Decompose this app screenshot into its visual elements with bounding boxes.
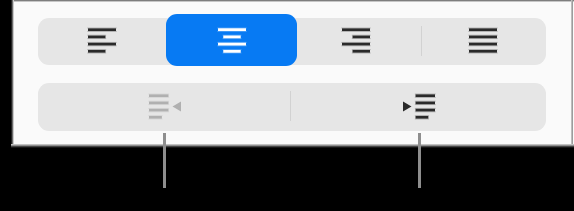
button[interactable]: Align right bbox=[292, 18, 419, 63]
button[interactable]: Justify bbox=[419, 18, 546, 63]
button[interactable]: Align center bbox=[166, 14, 297, 66]
button[interactable]: Decrease indent bbox=[38, 84, 292, 129]
button[interactable]: Increase indent bbox=[292, 84, 546, 129]
button[interactable]: Align left bbox=[38, 18, 165, 63]
